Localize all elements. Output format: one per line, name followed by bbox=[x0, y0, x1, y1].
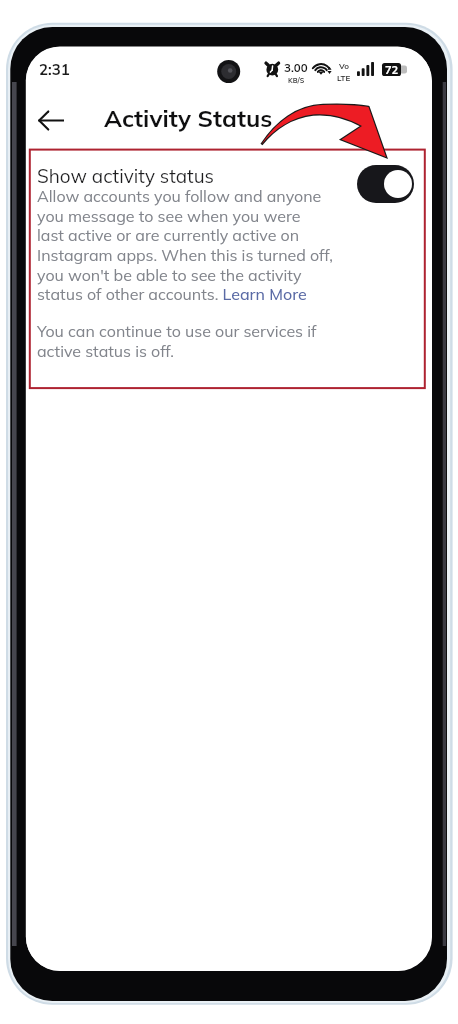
staticText: You can continue to use our services if bbox=[37, 321, 317, 341]
staticText: you message to see when you were bbox=[37, 206, 301, 226]
staticText: Instagram apps. When this is turned off, bbox=[37, 245, 333, 265]
staticText: Activity Status bbox=[104, 103, 273, 133]
button[interactable]: Back bbox=[30, 99, 72, 141]
button[interactable]: Show activity status toggle bbox=[357, 165, 414, 203]
staticText: you won't be able to see the activity bbox=[37, 265, 302, 285]
staticText: 72 bbox=[385, 63, 399, 76]
staticText: last active or are currently active on bbox=[37, 225, 300, 245]
staticText: Vo bbox=[339, 61, 349, 71]
staticText: active status is off. bbox=[37, 341, 175, 361]
staticText: KB/S bbox=[288, 76, 305, 85]
staticText: Allow accounts you follow and anyone bbox=[37, 186, 322, 206]
staticText: 2:31 bbox=[39, 60, 70, 79]
staticText: 3.00 bbox=[284, 60, 308, 74]
staticText: status of other accounts. Learn More bbox=[37, 284, 307, 304]
staticText: LTE bbox=[337, 73, 351, 83]
staticText: Show activity status bbox=[37, 164, 214, 188]
